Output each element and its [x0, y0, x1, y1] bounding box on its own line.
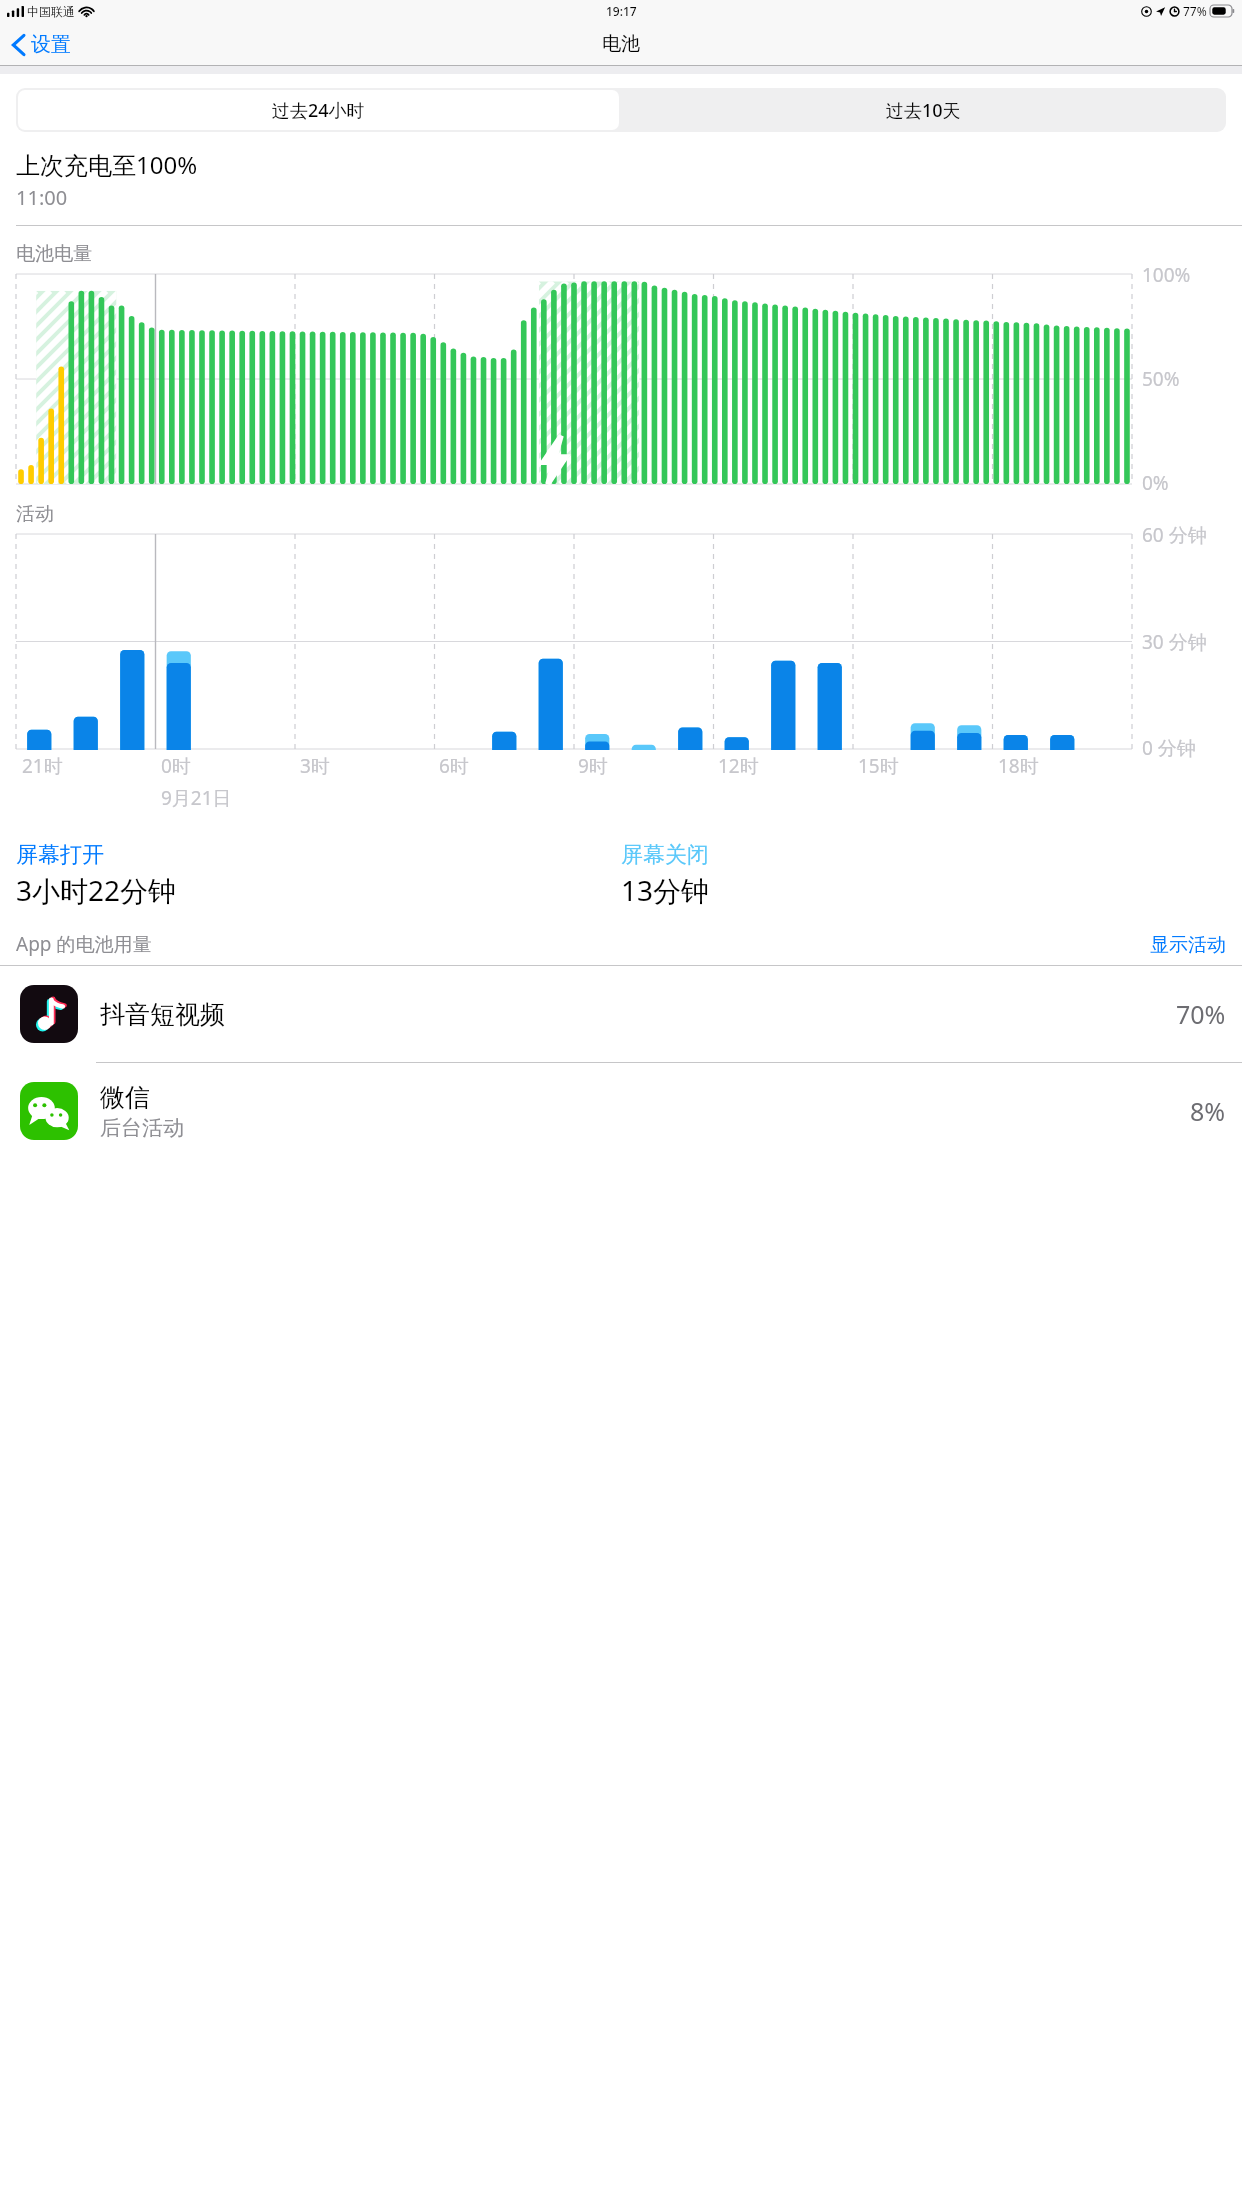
- staticText: 电池电量: [16, 242, 92, 266]
- staticText: 0%: [1142, 470, 1169, 496]
- staticText: 屏幕关闭: [621, 841, 709, 869]
- staticText: 3时: [300, 753, 330, 779]
- staticText: 11:00: [16, 184, 68, 211]
- staticText: 21时: [22, 753, 63, 779]
- button[interactable]: 显示活动: [1150, 933, 1226, 957]
- staticText: 后台活动: [100, 1115, 184, 1141]
- staticText: 15时: [858, 753, 899, 779]
- staticText: 屏幕打开: [16, 841, 104, 869]
- staticText: 77%: [1183, 3, 1207, 19]
- staticText: 上次充电至100%: [16, 148, 198, 181]
- staticText: 设置: [31, 32, 71, 57]
- staticText: 电池: [602, 32, 640, 56]
- staticText: 50%: [1142, 366, 1180, 392]
- button[interactable]: 设置: [8, 28, 75, 61]
- staticText: 18时: [998, 753, 1039, 779]
- staticText: 0 分钟: [1142, 735, 1196, 761]
- staticText: 100%: [1142, 262, 1191, 288]
- staticText: 微信: [100, 1082, 150, 1113]
- button[interactable]: 微信: [0, 1063, 1242, 1159]
- staticText: 70%: [1176, 997, 1226, 1031]
- staticText: 8%: [1190, 1094, 1226, 1128]
- staticText: 12时: [718, 753, 759, 779]
- staticText: 过去10天: [886, 98, 961, 123]
- staticText: 9月21日: [161, 785, 232, 811]
- staticText: 3小时22分钟: [16, 871, 177, 909]
- staticText: 19:17: [606, 3, 637, 19]
- staticText: 30 分钟: [1142, 629, 1207, 655]
- button[interactable]: 过去24小时: [18, 90, 619, 130]
- staticText: 抖音短视频: [100, 999, 225, 1030]
- staticText: 6时: [439, 753, 469, 779]
- staticText: 0时: [161, 753, 191, 779]
- staticText: 过去24小时: [272, 98, 365, 123]
- staticText: App 的电池用量: [16, 931, 152, 957]
- staticText: 显示活动: [1150, 933, 1226, 957]
- staticText: 中国联通: [27, 4, 75, 19]
- button[interactable]: 抖音短视频: [0, 966, 1242, 1062]
- staticText: 13分钟: [621, 871, 710, 909]
- button[interactable]: 过去10天: [621, 88, 1226, 132]
- staticText: 60 分钟: [1142, 522, 1207, 548]
- staticText: 9时: [578, 753, 608, 779]
- staticText: 活动: [16, 502, 54, 526]
